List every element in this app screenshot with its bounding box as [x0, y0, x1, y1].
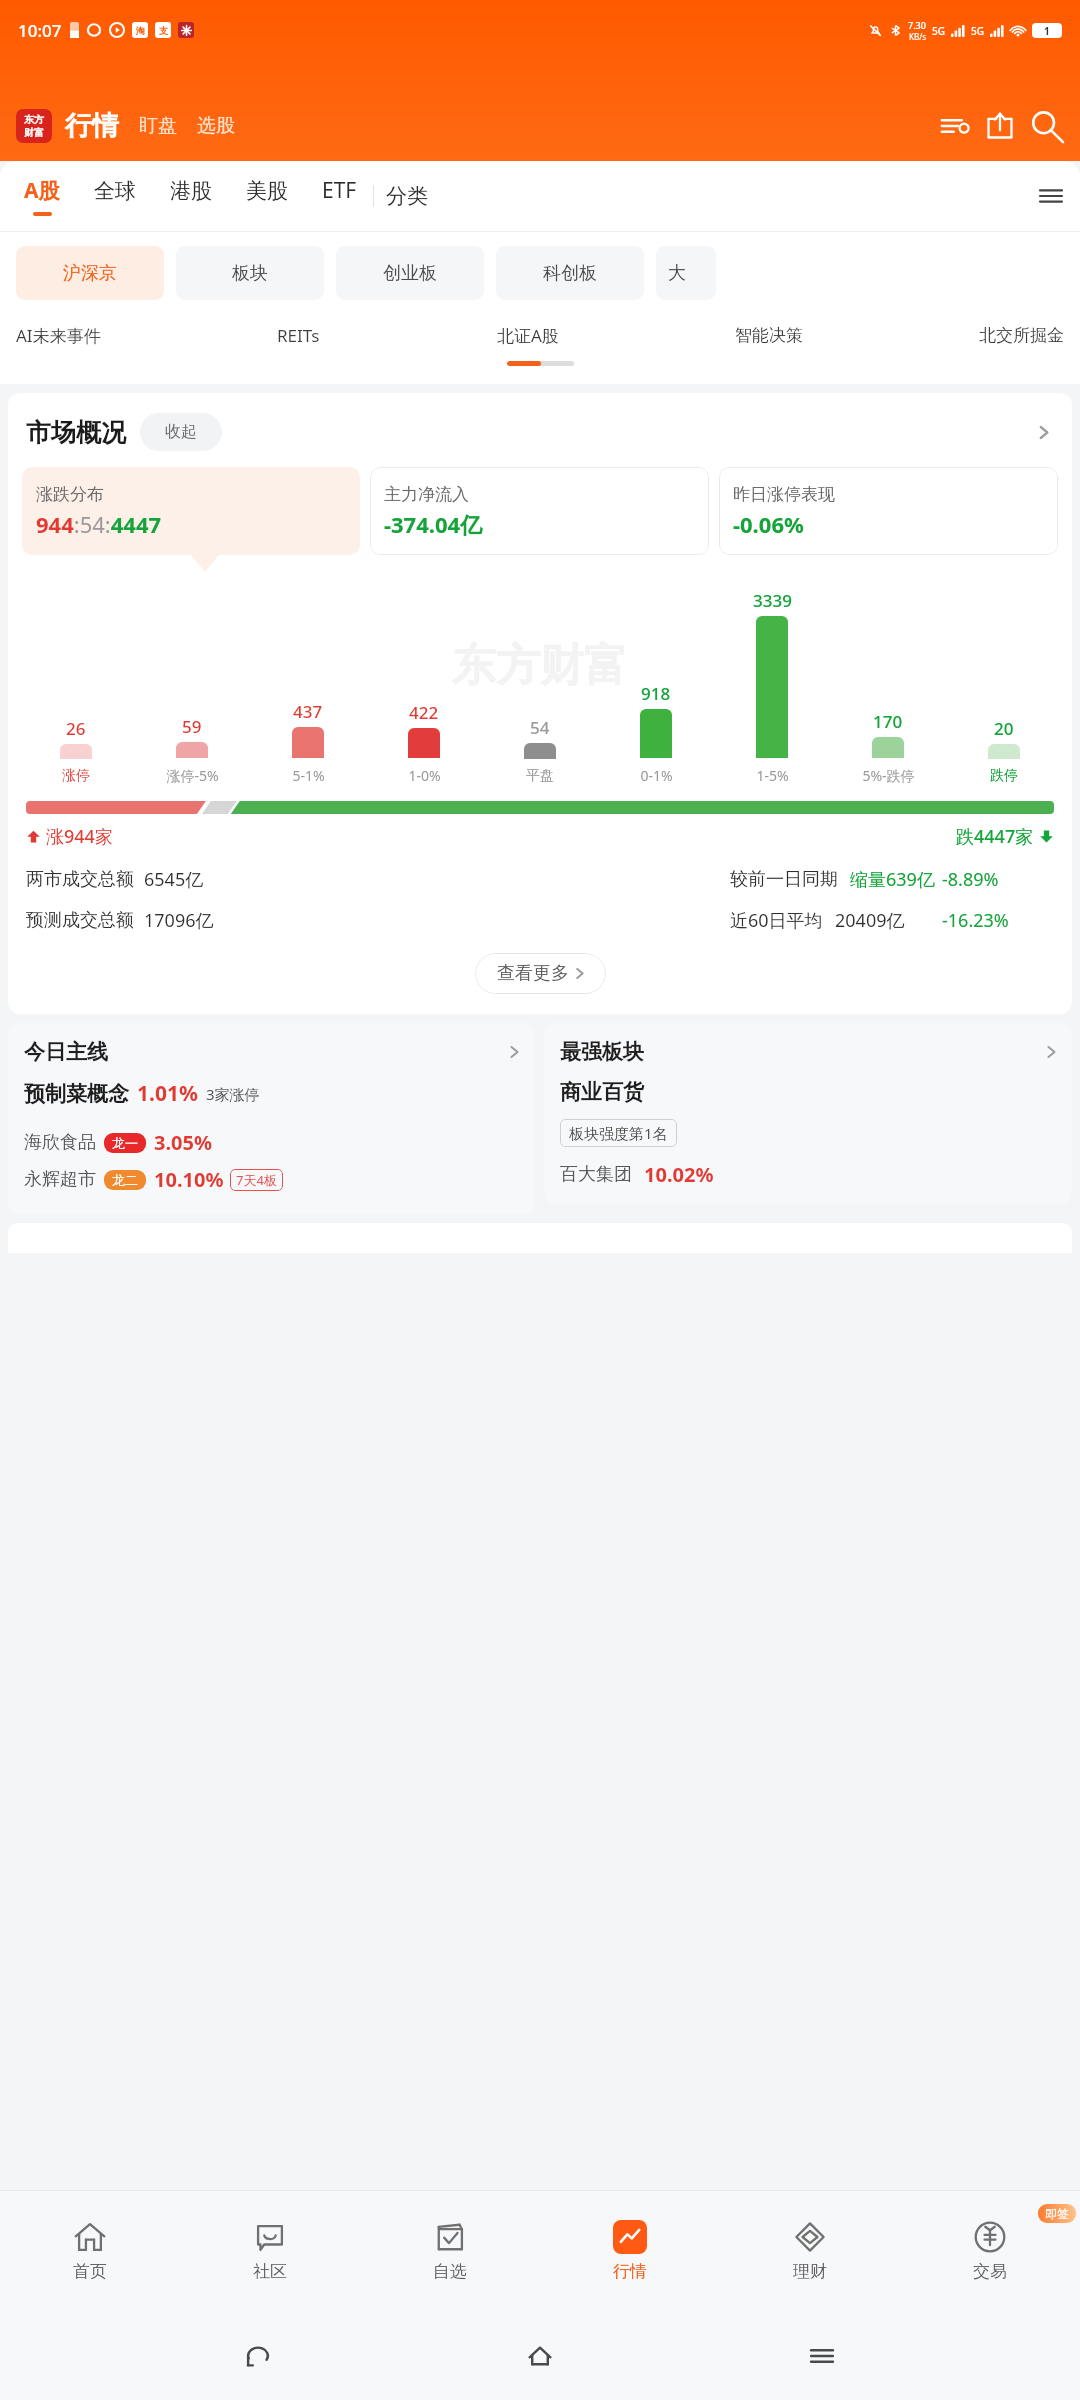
- staticText: 科创板: [543, 262, 597, 285]
- button[interactable]: 美股: [242, 178, 292, 215]
- staticText: 17096亿: [144, 908, 214, 933]
- staticText: 百大集团: [560, 1163, 632, 1186]
- button[interactable]: 盯盘: [139, 114, 177, 138]
- staticText: 首页: [73, 2261, 107, 2282]
- button[interactable]: AI未来事件: [16, 324, 101, 347]
- button[interactable]: 大: [656, 246, 716, 300]
- button[interactable]: 北交所掘金: [979, 325, 1064, 346]
- button[interactable]: Share: [982, 108, 1018, 144]
- button[interactable]: 最强板块: [544, 1023, 1072, 1204]
- button[interactable]: 理财: [720, 2190, 900, 2312]
- staticText: 3.05%: [154, 1129, 212, 1156]
- staticText: 收起: [165, 422, 197, 442]
- staticText: 板块强度第1名: [569, 1123, 668, 1143]
- button[interactable]: 港股: [166, 178, 216, 215]
- button[interactable]: 54: [482, 716, 598, 785]
- button[interactable]: Recents: [798, 2332, 846, 2380]
- button[interactable]: 创业板: [336, 246, 484, 300]
- button[interactable]: 59: [134, 715, 250, 785]
- button[interactable]: Home: [516, 2332, 564, 2380]
- staticText: 沪深京: [63, 262, 117, 285]
- button[interactable]: ETF: [318, 176, 361, 216]
- staticText: 近60日平均: [730, 908, 823, 933]
- button[interactable]: 科创板: [496, 246, 644, 300]
- button[interactable]: A股: [20, 176, 64, 216]
- button[interactable]: 涨跌分布: [22, 467, 360, 555]
- staticText: 26: [66, 717, 86, 740]
- button[interactable]: 437: [250, 700, 366, 785]
- button[interactable]: 收起: [140, 413, 222, 451]
- staticText: KB/s: [909, 31, 926, 42]
- staticText: 两市成交总额: [26, 868, 134, 891]
- button[interactable]: 交易: [900, 2190, 1080, 2312]
- staticText: 行情: [613, 2261, 647, 2282]
- button[interactable]: REITs: [277, 324, 320, 347]
- button[interactable]: 选股: [197, 114, 235, 138]
- staticText: 龙二: [112, 1172, 138, 1188]
- staticText: 5G: [971, 24, 984, 38]
- staticText: 跌4447家: [956, 824, 1034, 849]
- button[interactable]: 社区: [180, 2190, 360, 2312]
- staticText: 54: [530, 716, 550, 739]
- button[interactable]: 今日主线: [8, 1023, 535, 1214]
- button[interactable]: 北证A股: [497, 324, 559, 347]
- staticText: 预测成交总额: [26, 909, 134, 932]
- staticText: 1-0%: [408, 766, 441, 785]
- button[interactable]: Back: [234, 2332, 282, 2380]
- button[interactable]: Market overview details: [1028, 417, 1058, 447]
- staticText: 市场概况: [26, 417, 126, 448]
- button[interactable]: 查看更多: [475, 953, 606, 994]
- staticText: -374.04亿: [384, 509, 483, 539]
- staticText: 1.01%: [137, 1079, 198, 1108]
- button[interactable]: 918: [598, 682, 714, 785]
- staticText: 437: [293, 700, 323, 723]
- button[interactable]: 分类: [386, 183, 428, 209]
- button[interactable]: 20: [946, 717, 1062, 785]
- staticText: 最强板块: [560, 1039, 644, 1065]
- button[interactable]: 板块: [176, 246, 324, 300]
- button[interactable]: Search: [1026, 106, 1066, 146]
- staticText: 20: [994, 717, 1014, 740]
- staticText: 涨停: [62, 767, 90, 785]
- staticText: 3339: [753, 589, 792, 612]
- button[interactable]: 170: [830, 710, 946, 785]
- button[interactable]: 422: [366, 701, 482, 785]
- button[interactable]: 行情: [540, 2190, 720, 2312]
- staticText: 7天4板: [236, 1171, 277, 1189]
- staticText: 永辉超市: [24, 1168, 96, 1191]
- button[interactable]: 行情: [65, 109, 119, 143]
- staticText: 缩量639亿: [850, 867, 935, 892]
- staticText: 平盘: [526, 767, 554, 785]
- staticText: 3家涨停: [206, 1084, 260, 1104]
- button[interactable]: Filter settings: [936, 108, 972, 144]
- button[interactable]: 全球: [90, 178, 140, 215]
- staticText: 昨日涨停表现: [733, 484, 835, 505]
- button[interactable]: 首页: [0, 2190, 180, 2312]
- staticText: 涨跌分布: [36, 484, 104, 505]
- staticText: 支: [159, 25, 168, 36]
- staticText: 7.30: [908, 19, 926, 31]
- staticText: 5G: [932, 24, 945, 38]
- button[interactable]: 沪深京: [16, 246, 164, 300]
- staticText: 10.10%: [154, 1166, 224, 1193]
- staticText: 今日主线: [24, 1039, 108, 1065]
- button[interactable]: 3339: [714, 589, 830, 785]
- button[interactable]: 昨日涨停表现: [719, 467, 1058, 555]
- staticText: 即签: [1045, 2206, 1069, 2221]
- button[interactable]: 智能决策: [735, 325, 803, 346]
- staticText: 淘: [136, 25, 145, 36]
- staticText: A股: [24, 176, 60, 205]
- staticText: 自选: [433, 2261, 467, 2282]
- staticText: ETF: [322, 176, 357, 205]
- staticText: 全球: [94, 178, 136, 204]
- button[interactable]: 26: [18, 717, 134, 785]
- staticText: 6545亿: [144, 867, 204, 892]
- button[interactable]: 主力净流入: [370, 467, 709, 555]
- staticText: 1-5%: [756, 766, 789, 785]
- staticText: 10:07: [18, 19, 62, 42]
- button[interactable]: 东方: [16, 109, 52, 143]
- staticText: 422: [409, 701, 439, 724]
- button[interactable]: More tabs: [1034, 179, 1068, 213]
- staticText: 海欣食品: [24, 1131, 96, 1154]
- button[interactable]: 自选: [360, 2190, 540, 2312]
